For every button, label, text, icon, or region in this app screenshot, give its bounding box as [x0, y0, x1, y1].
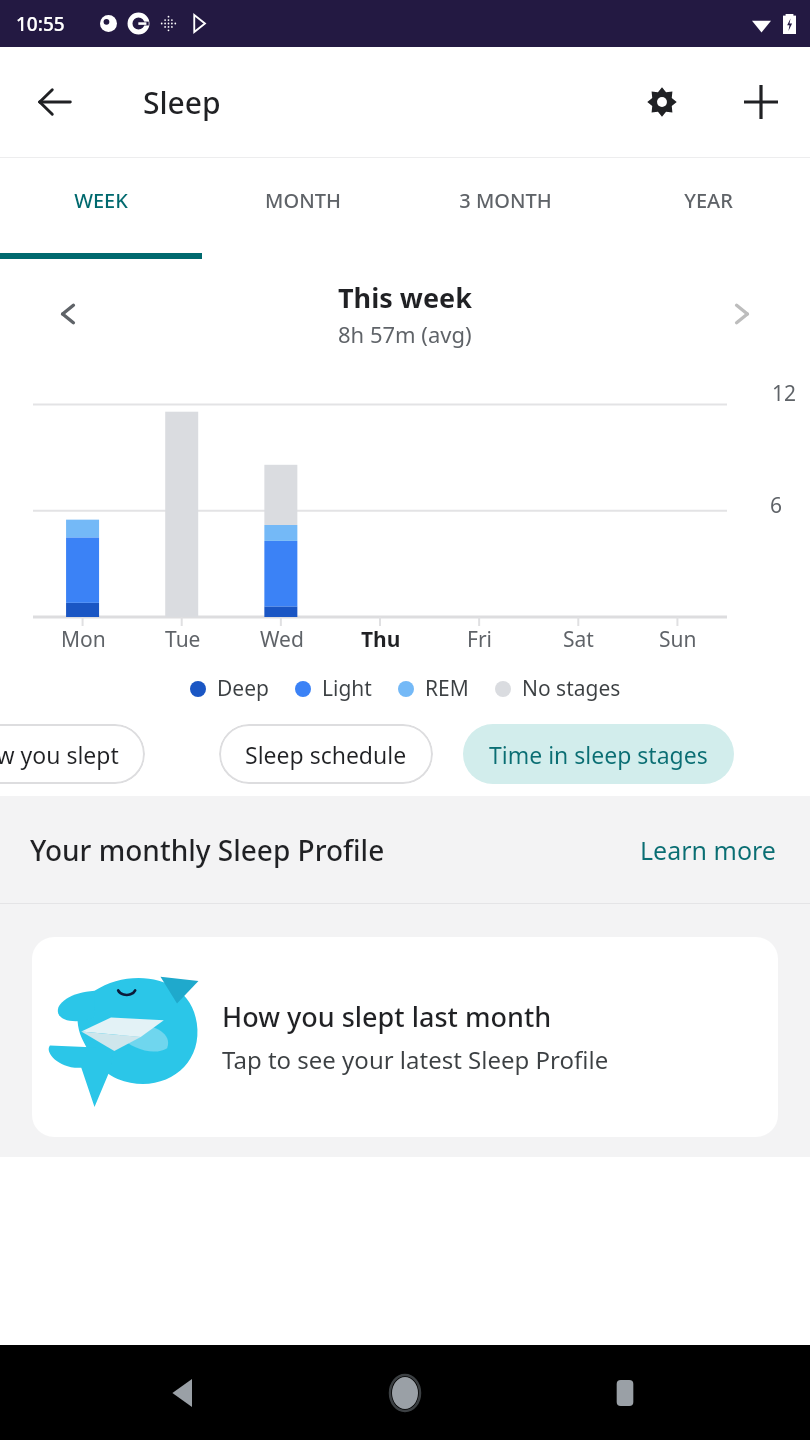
staticText: MONTH [265, 187, 341, 214]
button[interactable]: 3 MONTH [404, 158, 607, 259]
button[interactable]: How you slept [0, 724, 145, 784]
staticText: Thu [361, 625, 401, 654]
button[interactable]: Time in sleep stages [463, 724, 734, 784]
staticText: Fri [467, 625, 492, 654]
button[interactable]: Previous week [34, 280, 102, 348]
button[interactable]: WEEK [0, 158, 202, 259]
staticText: Your monthly Sleep Profile [30, 831, 385, 869]
staticText: Sun [659, 625, 697, 654]
staticText: Learn more [640, 833, 776, 867]
staticText: 6 [770, 491, 783, 520]
button[interactable]: Sleep schedule [219, 724, 433, 784]
staticText: How you slept last month [222, 998, 552, 1035]
button[interactable]: MONTH [202, 158, 404, 259]
staticText: Deep [217, 674, 269, 703]
button[interactable]: Next week [708, 280, 776, 348]
button[interactable]: YEAR [607, 158, 810, 259]
staticText: REM [425, 674, 469, 703]
button[interactable]: Recents [590, 1358, 660, 1428]
staticText: Light [322, 674, 372, 703]
staticText: Tap to see your latest Sleep Profile [222, 1043, 609, 1076]
staticText: This week [338, 279, 472, 316]
button[interactable]: Home [370, 1358, 440, 1428]
staticText: 3 MONTH [459, 187, 552, 214]
button[interactable]: Back [18, 65, 92, 139]
staticText: Tue [165, 625, 201, 654]
button[interactable]: Add [724, 65, 798, 139]
staticText: No stages [522, 674, 621, 703]
staticText: 12 [772, 379, 797, 408]
button[interactable]: How you slept last month [32, 937, 778, 1137]
staticText: 10:55 [16, 11, 65, 37]
staticText: Sleep schedule [245, 739, 407, 770]
staticText: 8h 57m (avg) [338, 319, 472, 349]
button[interactable]: Back [150, 1358, 220, 1428]
staticText: WEEK [74, 187, 128, 214]
staticText: Time in sleep stages [489, 739, 708, 770]
button[interactable]: Learn more [628, 825, 788, 875]
staticText: YEAR [684, 187, 733, 214]
staticText: Mon [61, 625, 106, 654]
button[interactable]: Settings [625, 65, 699, 139]
staticText: How you slept [0, 739, 119, 770]
staticText: Sat [563, 625, 594, 654]
staticText: Sleep [143, 82, 221, 123]
staticText: Wed [260, 625, 304, 654]
